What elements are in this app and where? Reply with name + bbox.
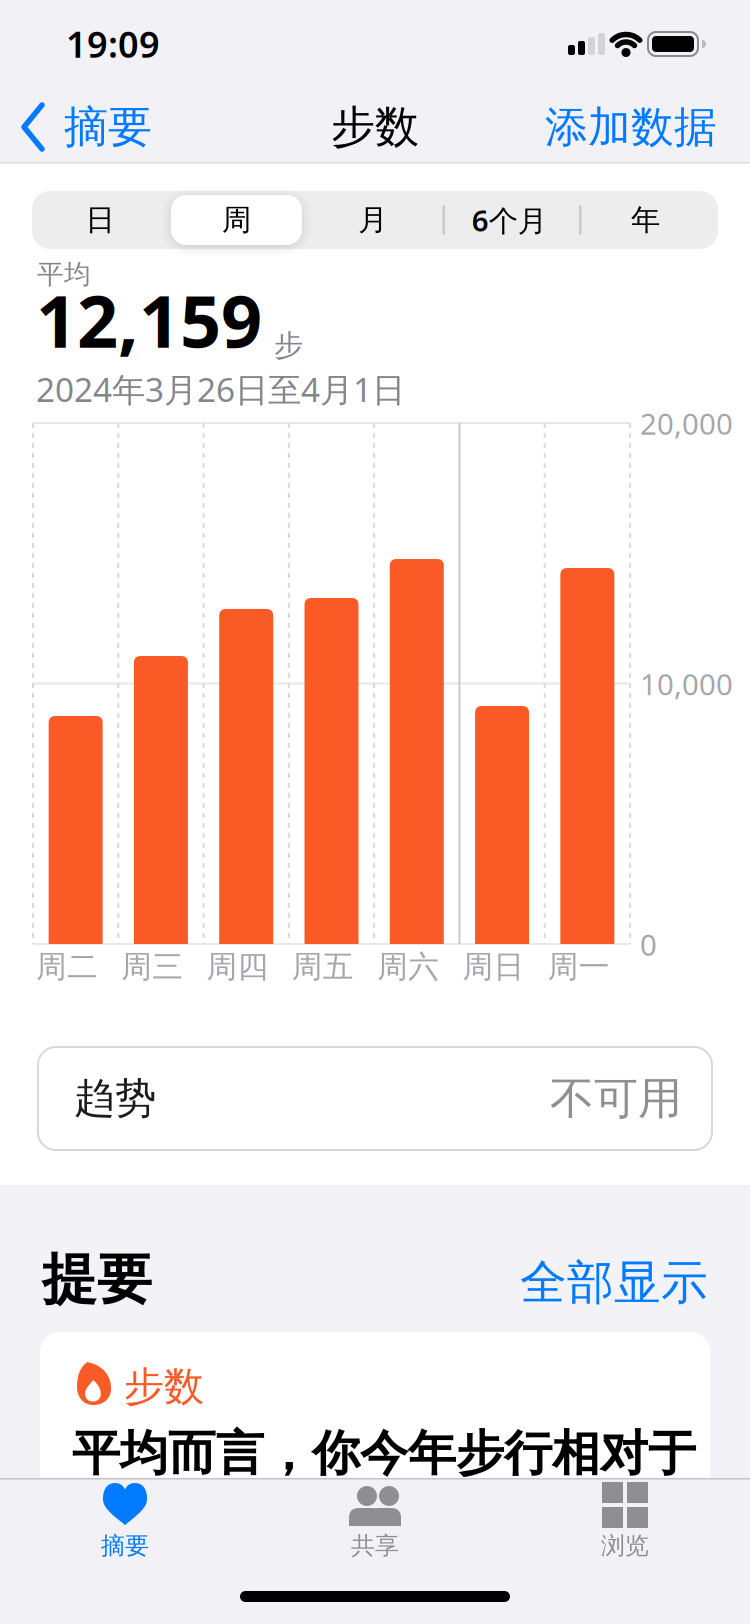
staticText: 周二 (36, 948, 98, 986)
staticText: 步 (274, 328, 303, 364)
staticText: 添加数据 (545, 101, 717, 153)
button[interactable]: 日 (32, 191, 168, 249)
staticText: 周 (222, 202, 251, 238)
staticText: 提要 (42, 1246, 152, 1313)
button[interactable]: 摘要 (0, 1478, 250, 1596)
staticText: 周一 (548, 948, 610, 986)
button[interactable]: 年 (578, 191, 714, 249)
staticText: 周三 (121, 948, 183, 986)
staticText: 6个月 (472, 200, 547, 239)
button[interactable]: 共享 (0, 1478, 500, 1596)
staticText: 共享 (351, 1531, 399, 1560)
button[interactable]: 摘要 (22, 100, 152, 154)
button[interactable]: 添加数据 (545, 101, 717, 153)
staticText: 周六 (377, 948, 439, 986)
staticText: 摘要 (64, 100, 152, 154)
staticText: 浏览 (601, 1531, 649, 1560)
button[interactable]: 趋势 (38, 1047, 712, 1150)
staticText: 日 (85, 202, 114, 238)
staticText: 2024年3月26日至4月1日 (36, 367, 405, 411)
staticText: 摘要 (101, 1531, 149, 1560)
button[interactable]: 6个月 (441, 191, 577, 249)
staticText: 平均而言，你今年步行相对于 (72, 1424, 696, 1483)
staticText: 0 (640, 925, 657, 964)
button[interactable]: 全部显示 (520, 1254, 708, 1311)
staticText: 步数 (124, 1362, 204, 1411)
staticText: 步数 (331, 100, 419, 154)
staticText: 20,000 (640, 404, 733, 443)
staticText: 周五 (292, 948, 354, 986)
button[interactable]: 步数 (40, 1332, 710, 1572)
staticText: 19:09 (66, 20, 160, 68)
staticText: 趋势 (74, 1073, 156, 1124)
button[interactable]: 周 (168, 191, 304, 249)
staticText: 周四 (207, 948, 269, 986)
staticText: 不可用 (550, 1071, 682, 1125)
staticText: 平均 (37, 258, 91, 291)
button[interactable]: 浏览 (0, 1478, 750, 1596)
staticText: 月 (358, 202, 387, 238)
button[interactable]: 月 (305, 191, 441, 249)
staticText: 周日 (462, 948, 524, 986)
staticText: 10,000 (640, 664, 733, 703)
staticText: 年 (631, 202, 660, 238)
staticText: 全部显示 (520, 1254, 708, 1311)
staticText: 12,159 (36, 272, 262, 368)
